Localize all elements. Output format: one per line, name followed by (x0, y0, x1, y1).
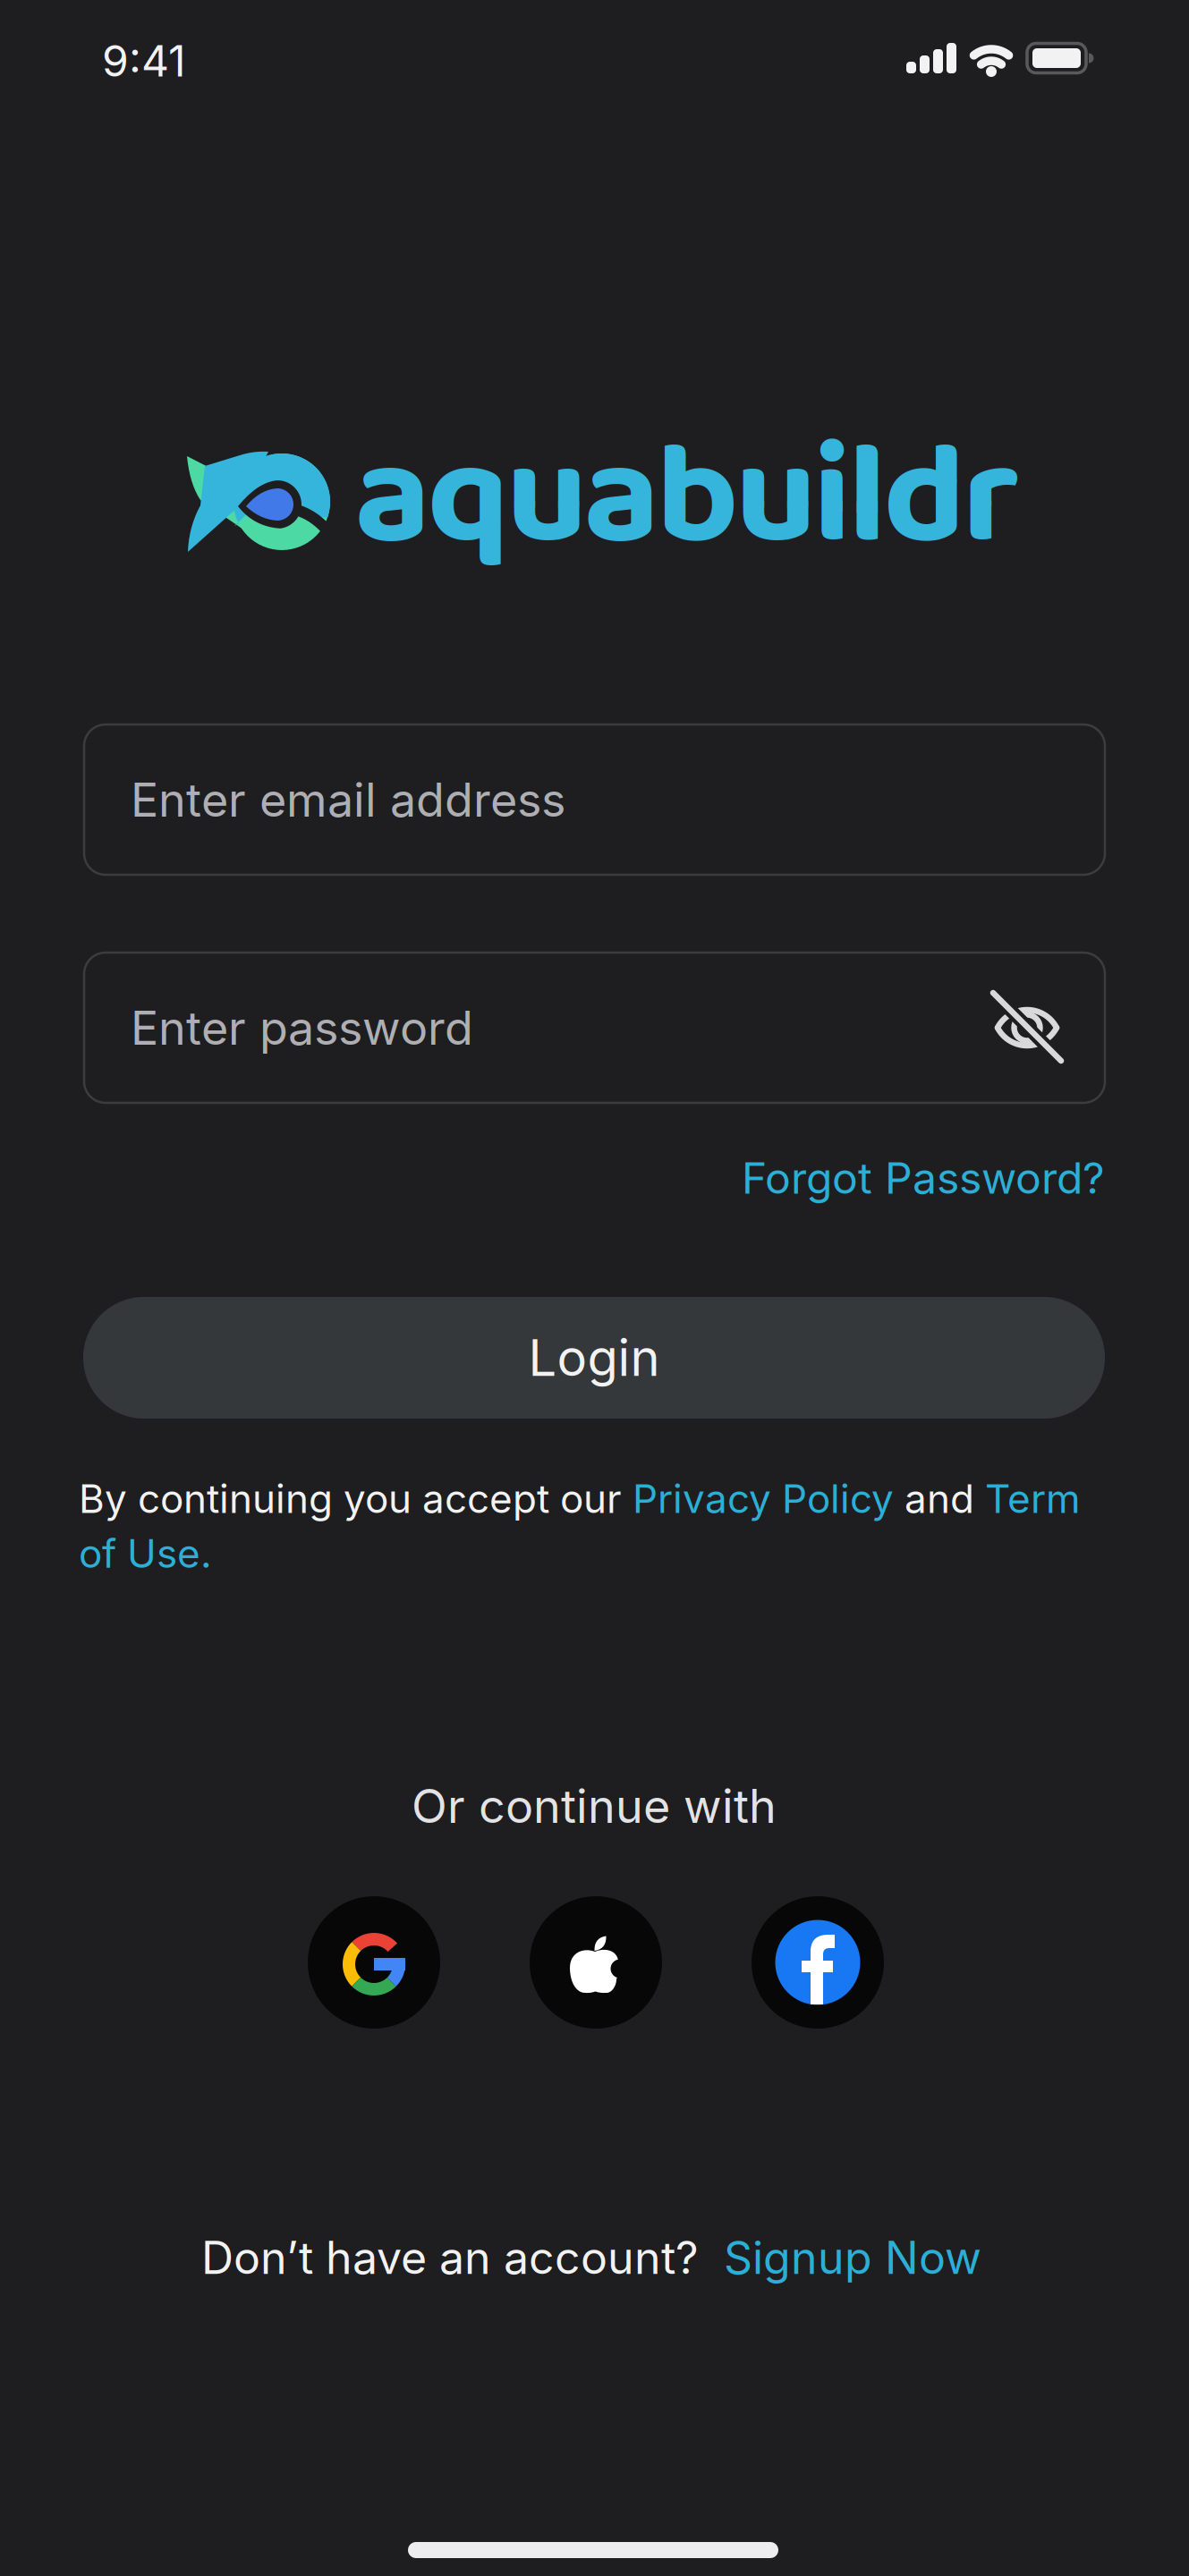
staticText: Enter password (131, 1000, 473, 1056)
button[interactable]: Continue with Apple (530, 1896, 662, 2029)
button[interactable]: Enter email address (84, 724, 1105, 875)
staticText: 9:41 (102, 35, 186, 87)
button[interactable]: Show password (978, 979, 1076, 1077)
staticText: Don’t have an account? (201, 2231, 699, 2285)
button[interactable]: Continue with Facebook (752, 1896, 884, 2029)
staticText: Term (985, 1475, 1081, 1522)
staticText: Login (528, 1327, 660, 1388)
staticText: and (894, 1475, 985, 1522)
button[interactable]: Term (985, 1475, 1081, 1522)
button[interactable]: Login (83, 1297, 1105, 1419)
staticText: Privacy Policy (633, 1475, 894, 1522)
staticText: Signup Now (724, 2231, 981, 2285)
staticText: aquabuildr (355, 385, 1019, 613)
staticText: Or continue with (412, 1778, 777, 1834)
staticText: Enter email address (131, 771, 565, 828)
button[interactable]: Signup Now (724, 2231, 981, 2285)
button[interactable]: of Use. (79, 1529, 212, 1577)
button[interactable]: Continue with Google (308, 1896, 440, 2029)
button[interactable]: Forgot Password? (742, 1152, 1105, 1204)
staticText: of Use. (79, 1529, 212, 1577)
staticText: By continuing you accept our (79, 1475, 633, 1522)
button[interactable]: Enter password (84, 953, 1105, 1103)
staticText: Forgot Password? (742, 1152, 1105, 1204)
button[interactable]: Privacy Policy (633, 1475, 894, 1522)
